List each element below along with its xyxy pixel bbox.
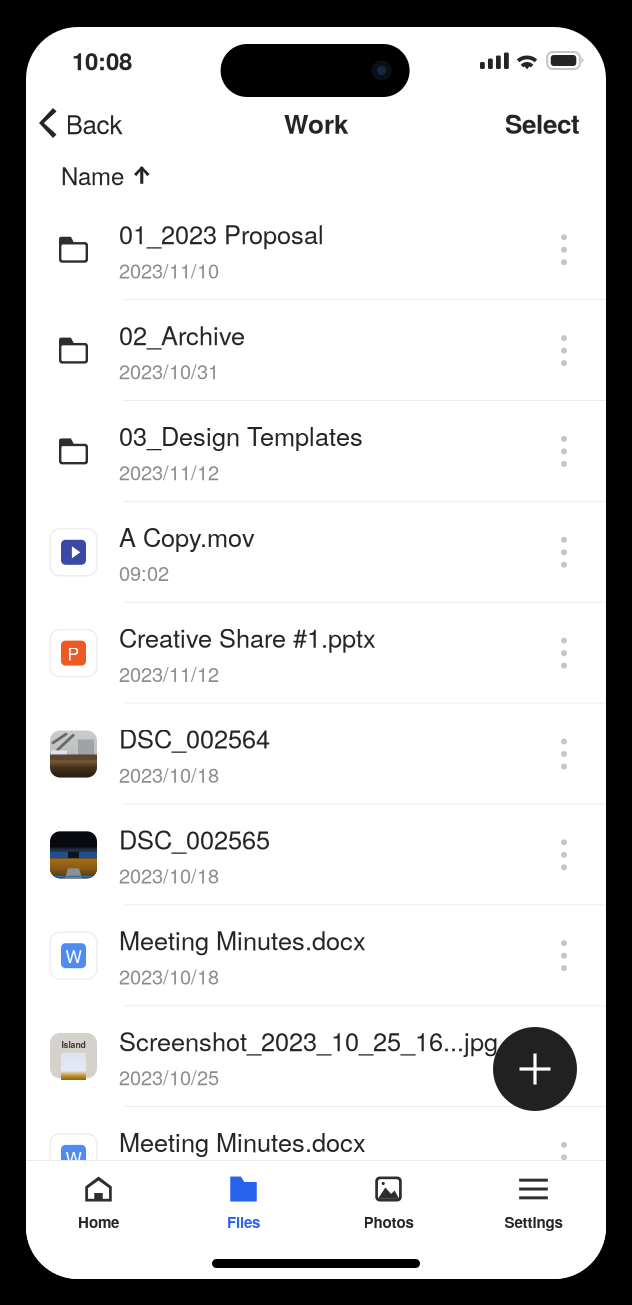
staticText: W	[65, 1145, 81, 1170]
staticText: Work	[284, 104, 348, 142]
staticText: W	[65, 943, 81, 968]
button[interactable]: A Copy.mov	[26, 502, 606, 603]
staticText: Creative Share #1.pptx	[119, 619, 376, 655]
button[interactable]: DSC_002565	[26, 804, 606, 905]
staticText: Screenshot_2023_10_25_16...jpg	[119, 1022, 498, 1058]
button[interactable]: Select	[505, 96, 606, 150]
staticText: DSC_002565	[119, 820, 270, 857]
button[interactable]: 02_Archive	[26, 300, 606, 401]
staticText: 02_Archive	[119, 316, 245, 352]
staticText: 2023/10/18	[119, 861, 219, 889]
staticText: Meeting Minutes.docx	[119, 921, 366, 957]
staticText: Name	[61, 158, 124, 192]
staticText: Photos	[363, 1211, 413, 1233]
staticText: A Copy.mov	[119, 518, 255, 554]
staticText: 09:02	[119, 558, 169, 587]
button[interactable]: Name	[26, 152, 606, 198]
staticText: 2023/11/12	[119, 659, 219, 687]
staticText: 2023/11/12	[119, 457, 219, 486]
button[interactable]: Photos	[316, 1176, 461, 1233]
staticText: 2023/11/10	[119, 255, 219, 284]
button[interactable]: P	[26, 603, 606, 703]
staticText: P	[67, 641, 79, 665]
button[interactable]: W	[26, 905, 606, 1006]
button[interactable]: Island	[26, 1006, 606, 1107]
staticText: DSC_002564	[119, 719, 270, 756]
staticText: Select	[505, 104, 580, 142]
button[interactable]: Add	[493, 1027, 577, 1111]
staticText: 2023/10/18	[119, 961, 219, 990]
staticText: 01_2023 Proposal	[119, 215, 324, 252]
staticText: 2023/10/31	[119, 356, 219, 385]
button[interactable]: W	[26, 1107, 606, 1208]
staticText: Back	[65, 104, 122, 142]
button[interactable]: 03_Design Templates	[26, 401, 606, 502]
staticText: Settings	[504, 1211, 562, 1233]
button[interactable]: Home	[26, 1176, 171, 1233]
staticText: 2023/10/18	[119, 760, 219, 788]
button[interactable]: Settings	[461, 1176, 606, 1233]
staticText: 03_Design Templates	[119, 417, 363, 453]
staticText: Island	[61, 1038, 85, 1051]
staticText: 2023/10/25	[119, 1062, 219, 1091]
button[interactable]: DSC_002564	[26, 703, 606, 804]
staticText: 10:08	[72, 43, 132, 78]
button[interactable]: Back	[26, 96, 122, 150]
staticText: Files	[227, 1211, 260, 1233]
button[interactable]: Files	[171, 1176, 316, 1233]
staticText: Home	[78, 1211, 119, 1233]
staticText: Meeting Minutes.docx	[119, 1123, 366, 1159]
button[interactable]: 01_2023 Proposal	[26, 199, 606, 300]
